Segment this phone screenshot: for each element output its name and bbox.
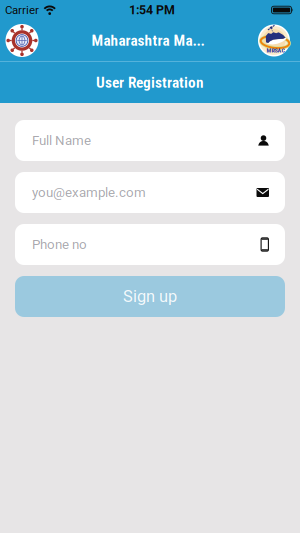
- button[interactable]: Sign up: [15, 276, 285, 317]
- staticText: Full Name: [32, 133, 91, 148]
- staticText: User Registration: [96, 73, 204, 91]
- button[interactable]: Maharashtra Maritime Board: [5, 23, 39, 57]
- staticText: Phone no: [32, 237, 87, 252]
- button[interactable]: Phone no: [15, 224, 285, 265]
- staticText: MRSAC: [266, 47, 284, 54]
- button[interactable]: Full Name: [15, 120, 285, 161]
- staticText: Maharashtra Ma...: [91, 31, 204, 49]
- staticText: 1:54 PM: [129, 3, 175, 17]
- button[interactable]: you@example.com: [15, 172, 285, 213]
- staticText: Sign up: [123, 287, 177, 306]
- staticText: Carrier: [5, 3, 39, 17]
- staticText: you@example.com: [32, 185, 146, 200]
- button[interactable]: MRSAC: [257, 23, 291, 57]
